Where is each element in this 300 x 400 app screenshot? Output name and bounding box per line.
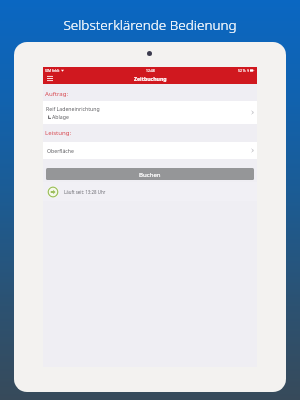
staticText: 12:48	[146, 68, 155, 73]
staticText: Buchen	[139, 170, 161, 178]
button[interactable]: Reif Ladeneinrichtung	[43, 101, 257, 124]
button[interactable]: Buchen	[46, 168, 254, 180]
staticText: Reif Ladeneinrichtung	[46, 105, 100, 112]
staticText: Zeitbuchung	[134, 75, 167, 82]
button[interactable]: Läuft seit: 13:28 Uhr	[43, 182, 257, 201]
staticText: 52 %	[238, 68, 246, 73]
button[interactable]: Menu	[44, 73, 55, 84]
staticText: SIM fehlt	[45, 68, 60, 73]
staticText: Ablage	[52, 113, 69, 120]
staticText: Oberfläche	[47, 147, 74, 154]
staticText: Selbsterklärende Bedienung	[0, 16, 300, 34]
staticText: Leistung:	[45, 128, 72, 136]
button[interactable]: Oberfläche	[43, 142, 257, 159]
staticText: Auftrag:	[45, 89, 69, 97]
staticText: Läuft seit: 13:28 Uhr	[64, 189, 106, 195]
